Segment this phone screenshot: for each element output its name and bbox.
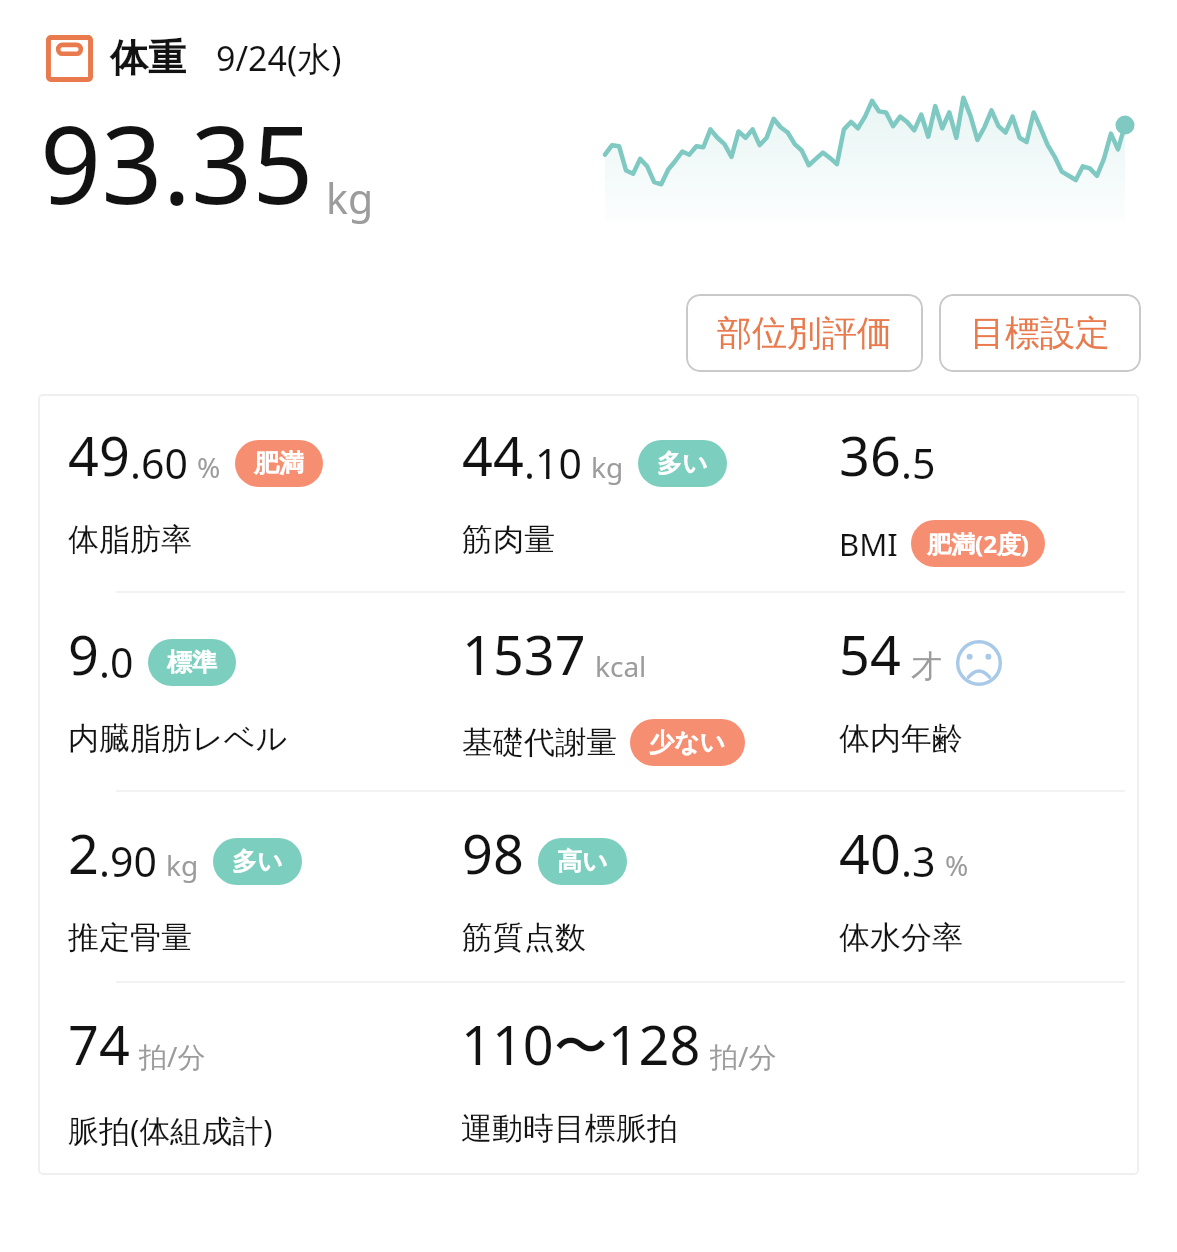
staticText: 才: [911, 647, 942, 686]
staticText: 推定骨量: [68, 918, 192, 957]
staticText: 98: [462, 816, 524, 890]
staticText: 高い: [557, 846, 608, 877]
button[interactable]: 110〜128: [461, 983, 1125, 1172]
staticText: 体水分率: [839, 918, 963, 957]
staticText: BMI: [839, 523, 898, 565]
other: Body age status: [955, 639, 1003, 687]
staticText: 標準: [167, 647, 217, 678]
staticText: 多い: [232, 846, 283, 877]
staticText: 49: [68, 418, 130, 492]
staticText: 運動時目標脈拍: [461, 1109, 678, 1148]
staticText: .0: [99, 634, 134, 690]
other: Weight scale: [46, 35, 93, 82]
staticText: 36: [839, 418, 901, 492]
staticText: 54: [839, 617, 901, 691]
staticText: 部位別評価: [717, 311, 892, 355]
staticText: 目標設定: [970, 311, 1110, 355]
staticText: 内臓脂肪レベル: [68, 719, 288, 758]
staticText: 少ない: [649, 727, 726, 758]
staticText: 9/24(水): [216, 35, 342, 81]
staticText: 筋肉量: [462, 520, 555, 559]
staticText: 93.35: [40, 90, 314, 236]
staticText: 拍/分: [710, 1037, 777, 1075]
staticText: %: [945, 846, 969, 884]
staticText: 体脂肪率: [68, 520, 192, 559]
button[interactable]: 54: [839, 593, 1125, 782]
staticText: %: [197, 448, 221, 486]
staticText: 筋質点数: [462, 918, 586, 957]
staticText: 44: [462, 418, 524, 492]
button[interactable]: 44: [462, 394, 839, 583]
button[interactable]: 36: [839, 394, 1125, 591]
staticText: 74: [68, 1007, 130, 1081]
staticText: .5: [901, 435, 936, 491]
staticText: .3: [901, 833, 936, 889]
staticText: 多い: [657, 448, 708, 479]
staticText: kg: [166, 846, 199, 884]
staticText: 2: [68, 816, 99, 890]
staticText: 基礎代謝量: [462, 723, 617, 762]
button[interactable]: 98: [462, 792, 839, 981]
staticText: 9: [68, 617, 99, 691]
staticText: 肥満(2度): [927, 527, 1029, 560]
staticText: 拍/分: [139, 1037, 206, 1075]
button[interactable]: 40: [839, 792, 1125, 981]
staticText: 体内年齢: [839, 719, 963, 758]
button[interactable]: 2: [68, 792, 462, 981]
staticText: 110〜128: [461, 1007, 701, 1081]
staticText: .10: [524, 435, 582, 491]
button[interactable]: 49: [68, 394, 462, 583]
staticText: kg: [591, 448, 624, 486]
button[interactable]: 9: [68, 593, 462, 782]
staticText: 40: [839, 816, 901, 890]
button[interactable]: 部位別評価: [686, 294, 923, 372]
staticText: 脈拍(体組成計): [68, 1109, 273, 1151]
staticText: kcal: [595, 647, 647, 685]
staticText: 肥満: [254, 448, 304, 479]
button[interactable]: 目標設定: [939, 294, 1141, 372]
staticText: .90: [99, 833, 157, 889]
button[interactable]: 74: [68, 983, 461, 1175]
staticText: kg: [326, 170, 374, 226]
staticText: 体重: [110, 34, 186, 82]
button[interactable]: 1537: [462, 593, 839, 790]
staticText: 1537: [462, 617, 586, 691]
staticText: .60: [130, 435, 188, 491]
